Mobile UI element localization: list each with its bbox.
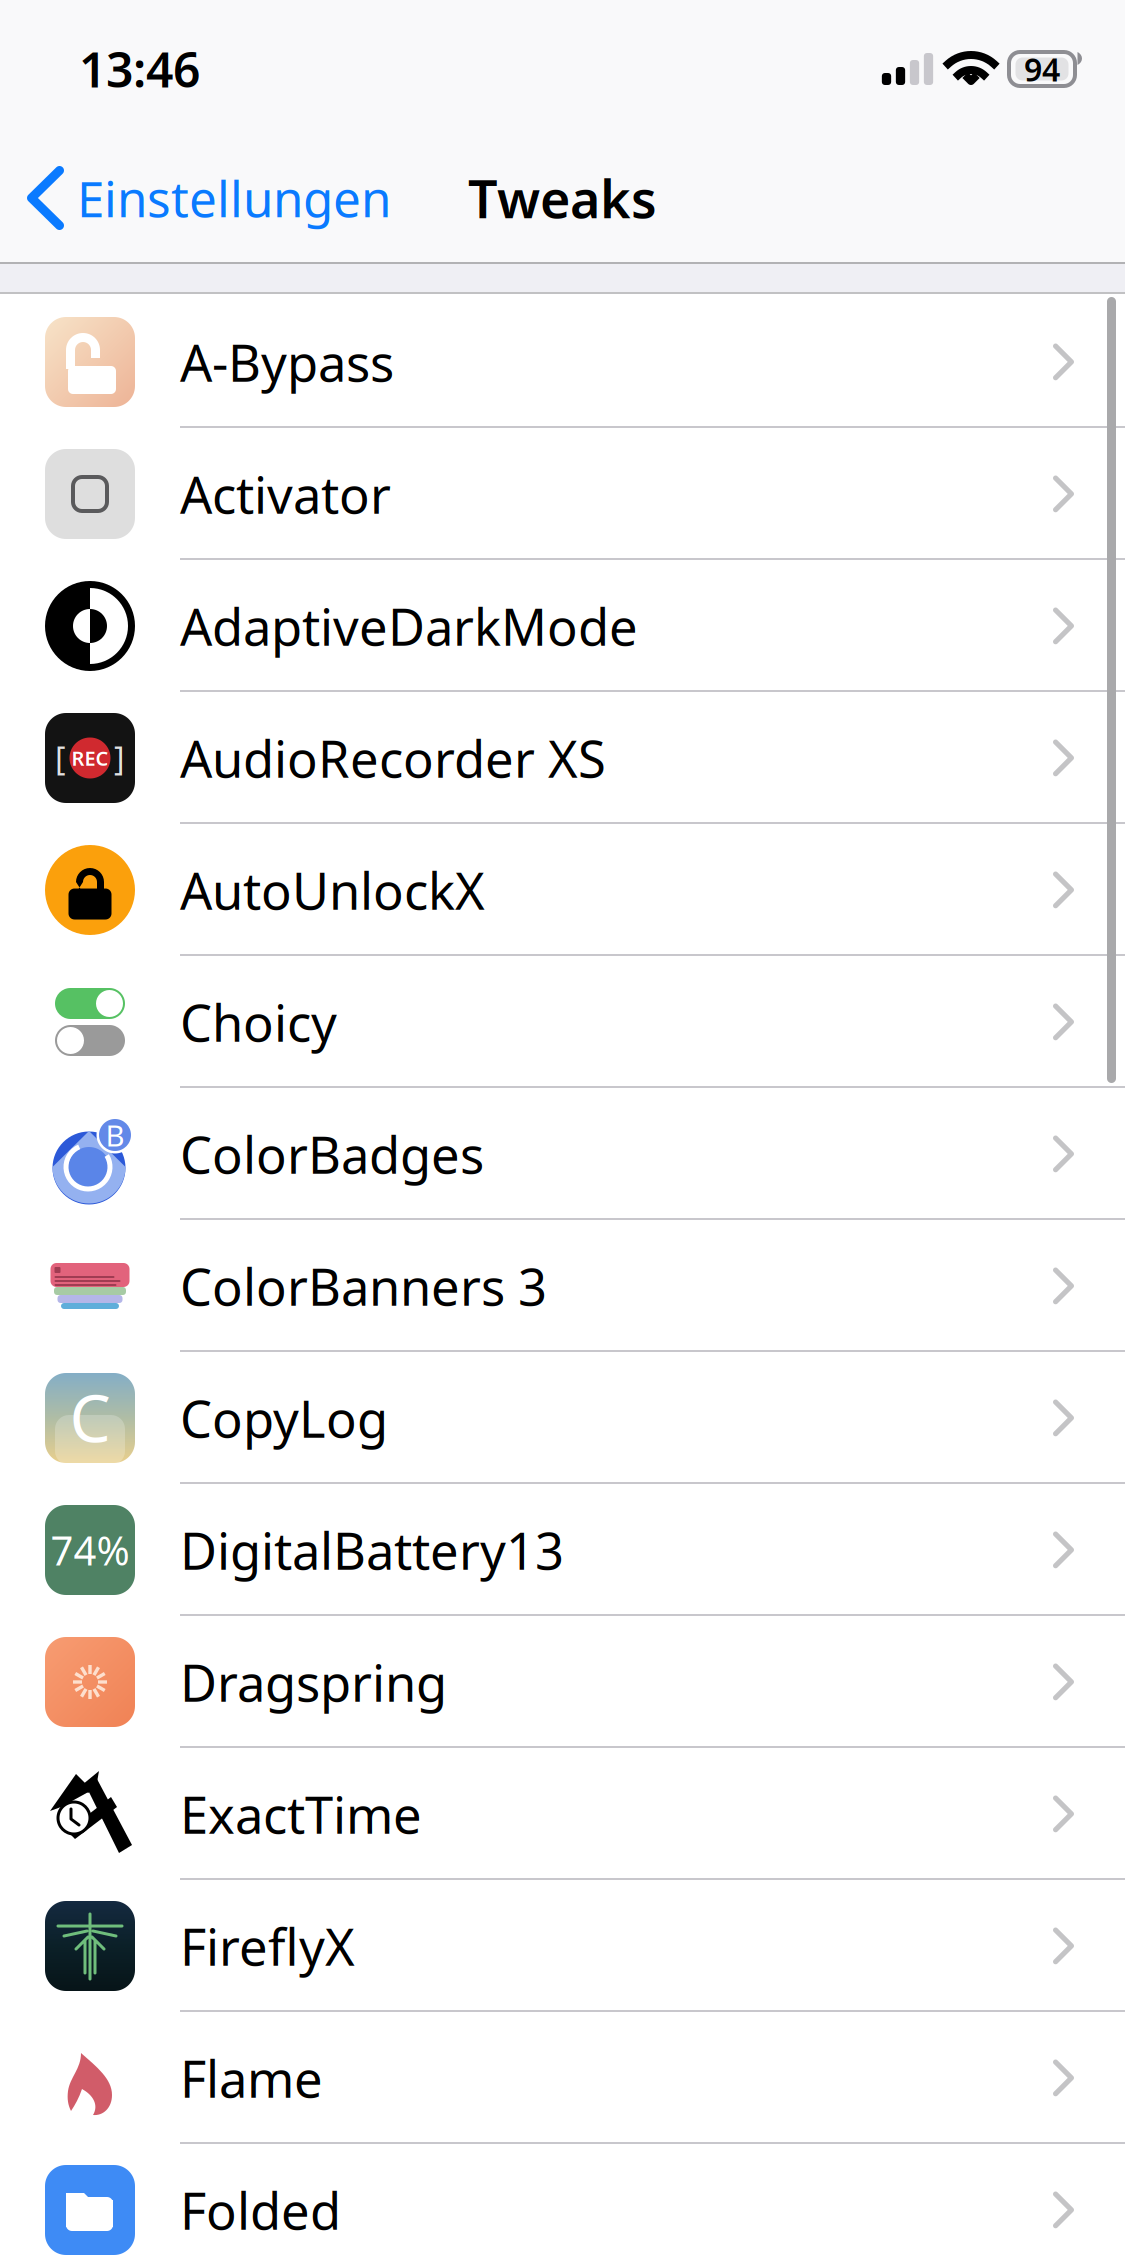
button[interactable]: [ [0,692,1125,824]
staticText: Tweaks [468,163,657,233]
staticText: [ [55,737,66,779]
staticText: C [69,1374,110,1460]
button[interactable]: FireflyX [0,1880,1125,2012]
button[interactable]: Activator [0,428,1125,560]
button[interactable]: ExactTime [0,1748,1125,1880]
button[interactable]: Dragspring [0,1616,1125,1748]
staticText: Folded [180,2176,341,2244]
staticText: Choicy [180,988,337,1056]
staticText: 74% [50,1523,129,1576]
staticText: Einstellungen [77,165,391,231]
button[interactable]: Flame [0,2012,1125,2144]
staticText: Flame [180,2044,323,2112]
staticText: ExactTime [180,1780,422,1848]
staticText: ColorBadges [180,1120,484,1188]
staticText: Dragspring [180,1648,447,1716]
staticText: FireflyX [180,1912,355,1980]
staticText: DigitalBattery13 [180,1516,564,1584]
staticText: ] [114,737,125,779]
button[interactable]: A-Bypass [0,296,1125,428]
staticText: ColorBanners 3 [180,1252,547,1320]
button[interactable]: Einstellungen [0,132,411,264]
button[interactable]: C [0,1352,1125,1484]
button[interactable]: AdaptiveDarkMode [0,560,1125,692]
button[interactable]: Choicy [0,956,1125,1088]
button[interactable]: ColorBanners 3 [0,1220,1125,1352]
staticText: REC [71,745,108,771]
staticText: 94 [1024,48,1060,90]
button[interactable]: AutoUnlockX [0,824,1125,956]
staticText: A-Bypass [180,328,394,396]
staticText: CopyLog [180,1384,388,1452]
staticText: AdaptiveDarkMode [180,592,638,660]
staticText: B [105,1115,124,1154]
staticText: Activator [180,460,391,528]
button[interactable]: B [0,1088,1125,1220]
staticText: 13:46 [79,37,200,101]
staticText: AutoUnlockX [180,856,485,924]
button[interactable]: 74% [0,1484,1125,1616]
button[interactable]: Folded [0,2144,1125,2263]
staticText: AudioRecorder XS [180,724,606,792]
